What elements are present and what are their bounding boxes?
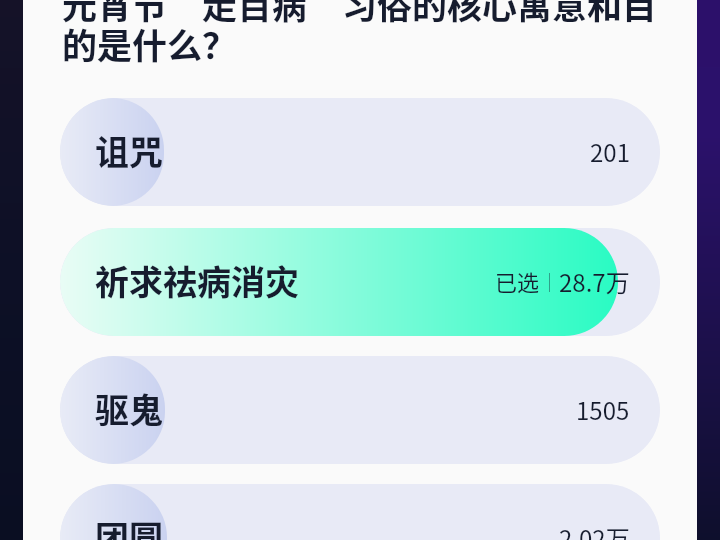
button[interactable]: 祈求祛病消灾	[60, 228, 660, 336]
button[interactable]: 诅咒	[60, 98, 660, 206]
staticText: 28.7万	[559, 264, 630, 299]
staticText: 201	[590, 134, 630, 169]
staticText: 2.02万	[559, 520, 630, 540]
staticText: 诅咒	[95, 126, 163, 175]
staticText: 已选	[495, 265, 540, 297]
staticText: 的是什么？	[62, 18, 238, 69]
button[interactable]: 团圆	[60, 484, 660, 540]
staticText: 团圆	[95, 512, 163, 540]
staticText: 元宵节“走百病”习俗的核心寓意和目	[62, 0, 658, 29]
staticText: 祈求祛病消灾	[95, 256, 299, 305]
staticText: 驱鬼	[95, 384, 163, 433]
button[interactable]: 驱鬼	[60, 356, 660, 464]
staticText: 1505	[576, 392, 630, 427]
